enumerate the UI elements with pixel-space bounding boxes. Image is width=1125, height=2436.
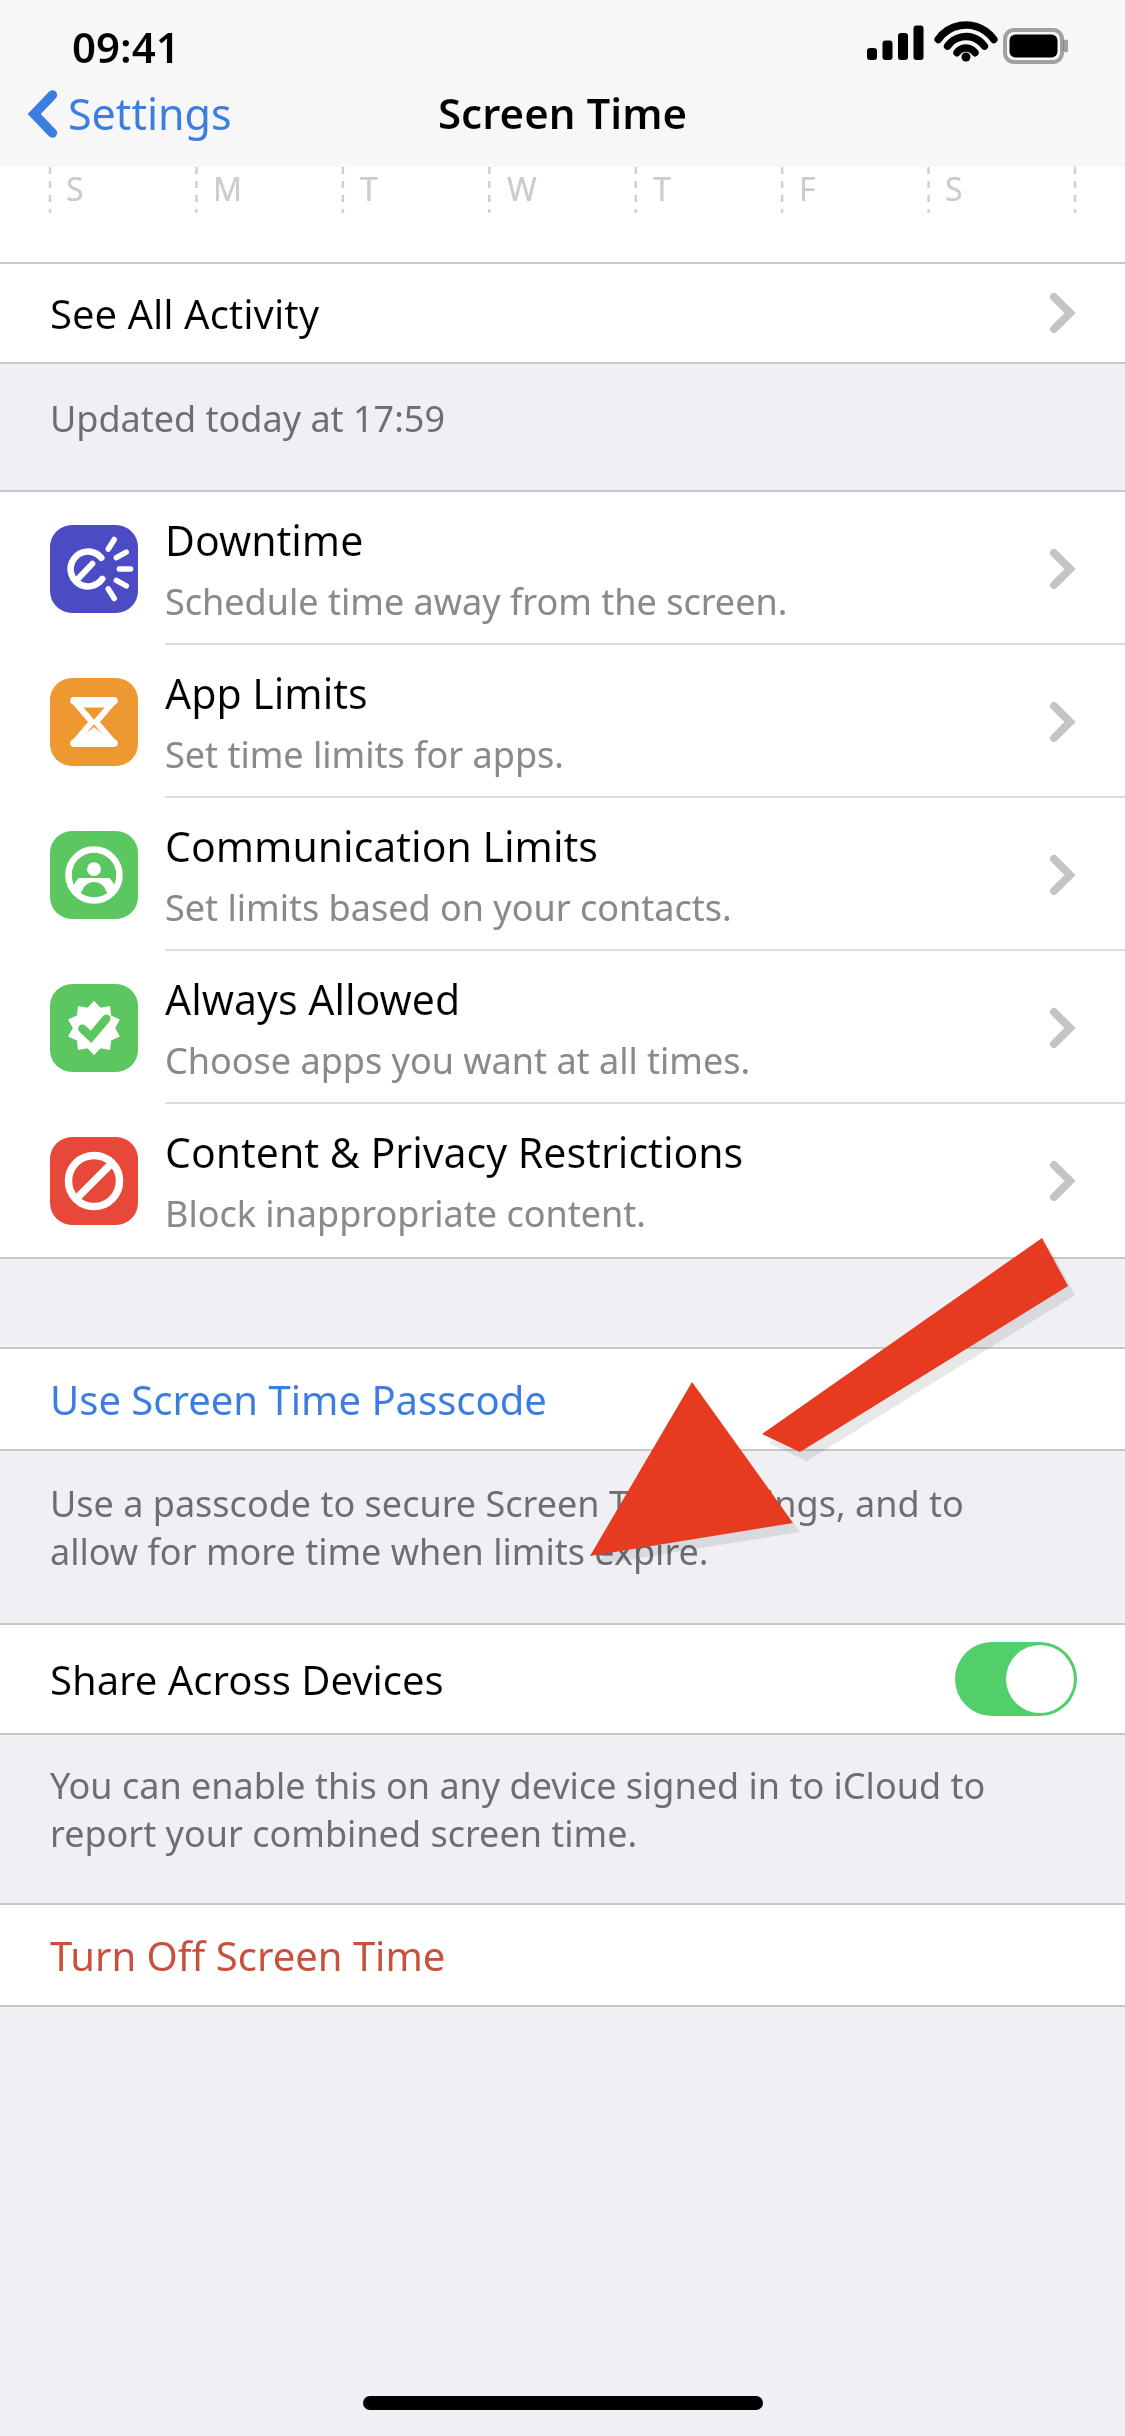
staticText: Always Allowed bbox=[165, 971, 461, 1027]
other: Annotation arrow pointing to Use Screen … bbox=[0, 0, 1125, 2436]
staticText: Block inappropriate content. bbox=[165, 1189, 646, 1238]
button[interactable]: Settings bbox=[18, 74, 244, 153]
staticText: M bbox=[213, 167, 243, 211]
button[interactable]: Share Across Devices, on bbox=[955, 1642, 1077, 1716]
button[interactable]: Communication Limits bbox=[0, 798, 1125, 951]
button[interactable]: Always Allowed bbox=[0, 951, 1125, 1104]
staticText: Settings bbox=[68, 84, 232, 143]
staticText: S bbox=[945, 167, 963, 211]
staticText: T bbox=[653, 167, 671, 211]
staticText: Use Screen Time Passcode bbox=[50, 1372, 547, 1426]
staticText: 09:41 bbox=[72, 18, 180, 75]
staticText: Screen Time bbox=[438, 84, 688, 141]
staticText: Choose apps you want at all times. bbox=[165, 1036, 751, 1085]
staticText: You can enable this on any device signed… bbox=[50, 1761, 986, 1857]
staticText: T bbox=[360, 167, 378, 211]
button[interactable]: See All Activity bbox=[0, 264, 1125, 362]
staticText: S bbox=[66, 167, 84, 211]
staticText: Set limits based on your contacts. bbox=[165, 883, 732, 932]
staticText: App Limits bbox=[165, 665, 368, 721]
staticText: F bbox=[799, 167, 816, 211]
button[interactable]: Use Screen Time Passcode bbox=[0, 1349, 1125, 1449]
button[interactable]: Turn Off Screen Time bbox=[0, 1905, 1125, 2005]
staticText: Downtime bbox=[165, 512, 364, 568]
staticText: Share Across Devices bbox=[50, 1652, 444, 1706]
staticText: Set time limits for apps. bbox=[165, 730, 564, 779]
button[interactable]: App Limits bbox=[0, 645, 1125, 798]
button[interactable]: Share Across Devices bbox=[0, 1625, 1125, 1733]
staticText: Content & Privacy Restrictions bbox=[165, 1124, 744, 1180]
staticText: Updated today at 17:59 bbox=[50, 394, 445, 443]
staticText: Communication Limits bbox=[165, 818, 598, 874]
button[interactable]: Downtime bbox=[0, 492, 1125, 645]
staticText: Schedule time away from the screen. bbox=[165, 577, 788, 626]
staticText: W bbox=[507, 167, 537, 211]
staticText: Use a passcode to secure Screen Time set… bbox=[50, 1479, 964, 1575]
staticText: See All Activity bbox=[50, 286, 320, 340]
button[interactable]: Content & Privacy Restrictions bbox=[0, 1104, 1125, 1257]
staticText: Turn Off Screen Time bbox=[50, 1928, 446, 1982]
